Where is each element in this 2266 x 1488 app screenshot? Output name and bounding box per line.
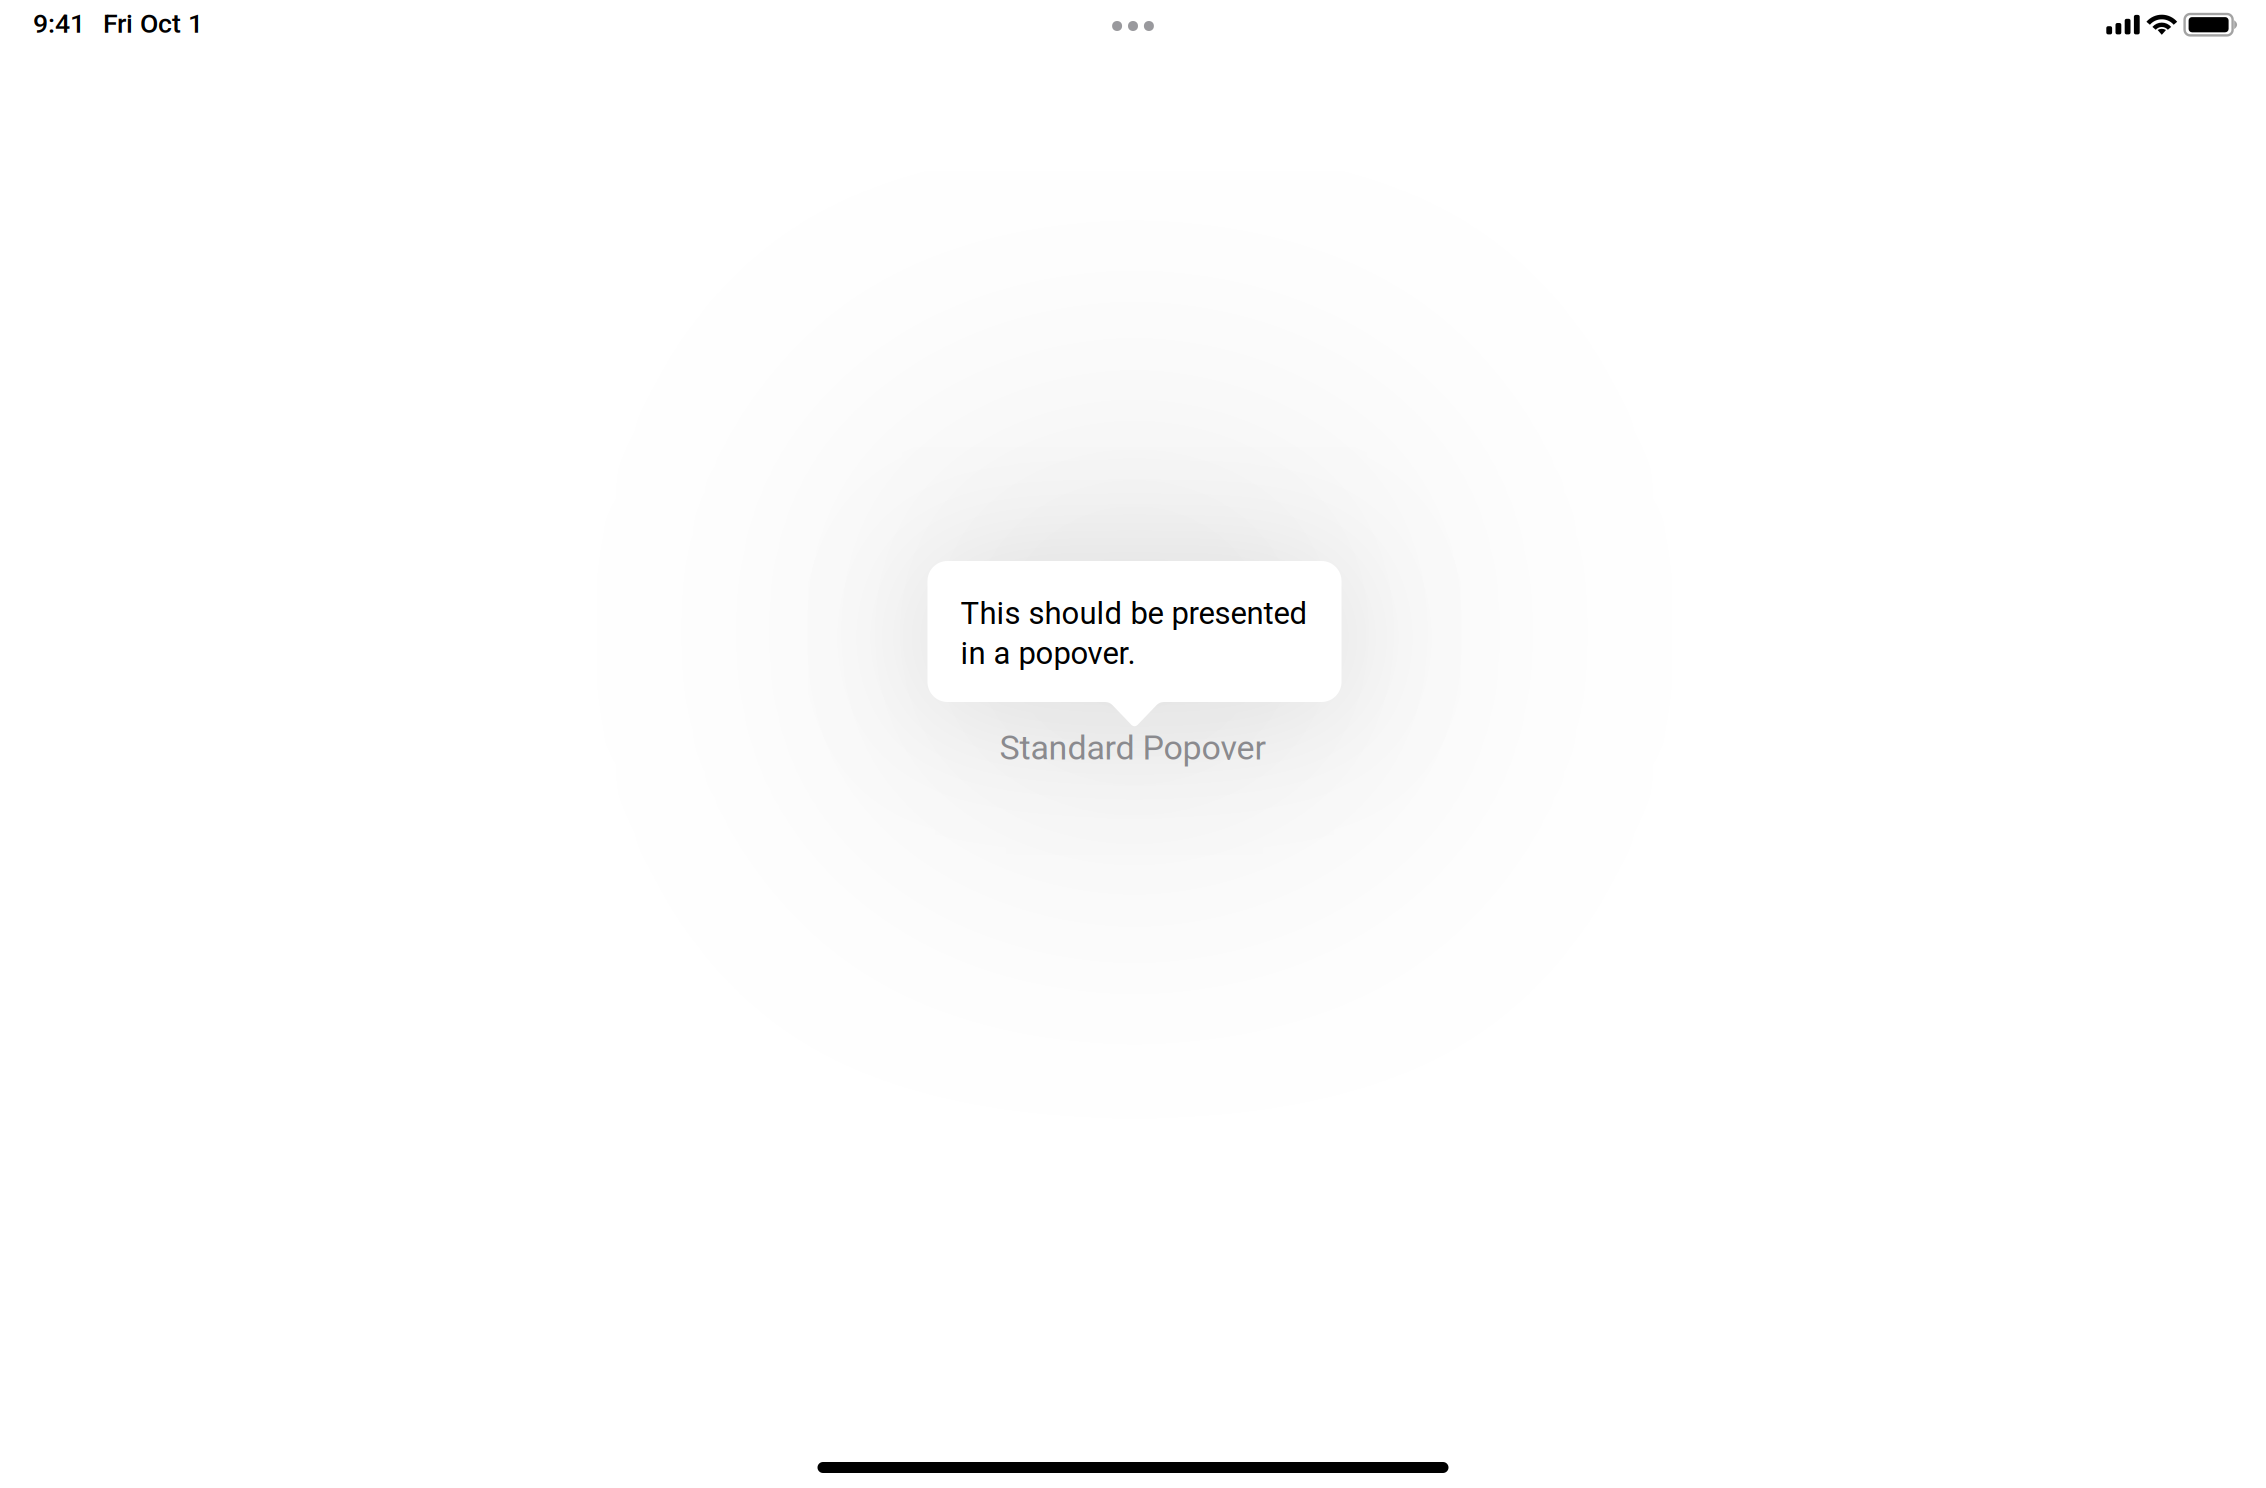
staticText: 9:41 xyxy=(33,8,85,39)
staticText: Standard Popover xyxy=(999,728,1266,768)
staticText: Fri Oct 1 xyxy=(103,8,203,39)
staticText: This should be presented xyxy=(960,595,1307,632)
button[interactable]: Standard Popover xyxy=(968,722,1298,774)
staticText: in a popover. xyxy=(960,635,1135,672)
button[interactable]: Multitasking Controls xyxy=(1063,4,1203,48)
